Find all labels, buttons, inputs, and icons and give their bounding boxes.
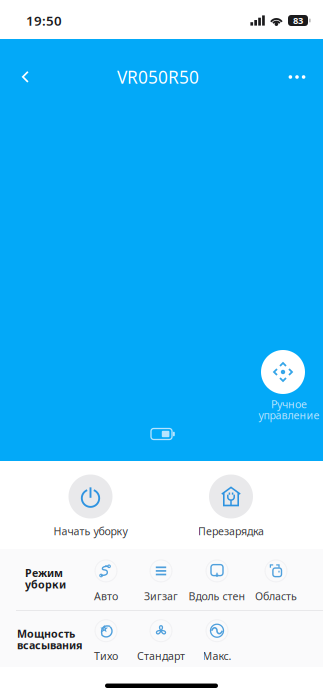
staticText: Перезарядка	[198, 524, 264, 538]
button[interactable]: Авто	[75, 560, 137, 602]
staticText: Тихо	[94, 649, 118, 663]
button[interactable]: Область	[245, 560, 307, 602]
staticText: Начать уборку	[53, 524, 127, 538]
staticText: VR050R50	[117, 65, 199, 88]
staticText: управление	[258, 408, 319, 422]
button[interactable]: Зигзаг	[130, 560, 192, 602]
button[interactable]: Начать уборку	[35, 474, 145, 536]
staticText: Мощность	[17, 626, 75, 641]
button[interactable]: Back	[4, 55, 48, 99]
button[interactable]: More options	[275, 55, 319, 99]
button[interactable]: Стандарт	[130, 620, 192, 662]
staticText: Вдоль стен	[188, 589, 245, 603]
staticText: Макс.	[202, 649, 231, 663]
button[interactable]: Тихо	[75, 620, 137, 662]
staticText: Зигзаг	[144, 589, 178, 603]
staticText: Ручное	[271, 397, 307, 411]
staticText: Режим	[25, 566, 63, 580]
staticText: Авто	[94, 589, 118, 603]
staticText: всасывания	[17, 638, 82, 652]
button[interactable]: Ручное	[256, 350, 322, 422]
button[interactable]: Вдоль стен	[186, 560, 248, 602]
staticText: 83	[293, 14, 303, 27]
staticText: Стандарт	[137, 649, 185, 663]
button[interactable]: Перезарядка	[176, 474, 286, 536]
staticText: уборки	[25, 577, 66, 591]
staticText: 19:50	[26, 12, 62, 29]
staticText: Область	[255, 589, 297, 603]
button[interactable]: Макс.	[186, 620, 248, 662]
